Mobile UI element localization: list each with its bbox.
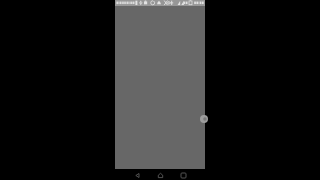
button[interactable]: Back [132,170,143,180]
button[interactable]: Home [155,170,166,180]
button[interactable]: Scroll handle [200,115,208,123]
button[interactable]: Recents [178,170,189,180]
